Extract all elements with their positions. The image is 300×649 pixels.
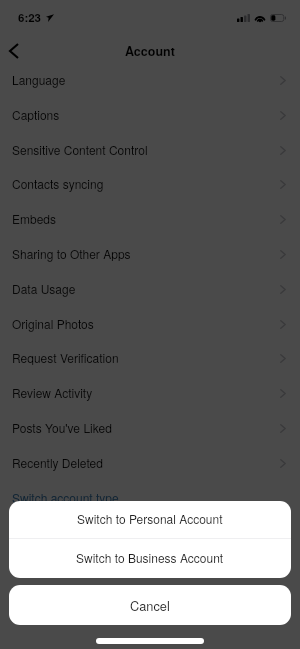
button[interactable]: Embeds [0, 201, 300, 236]
staticText: 6:23 [18, 9, 42, 25]
button[interactable]: Switch to Personal Account [9, 501, 291, 538]
staticText: Request Verification [12, 349, 119, 366]
button[interactable]: Original Photos [0, 306, 300, 341]
button[interactable]: Cancel [9, 585, 291, 625]
staticText: Posts You've Liked [12, 419, 112, 436]
button[interactable]: Sharing to Other Apps [0, 236, 300, 271]
button[interactable]: Contacts syncing [0, 166, 300, 201]
staticText: Switch to Personal Account [77, 510, 223, 527]
button[interactable]: Request Verification [0, 340, 300, 375]
button[interactable]: Back [0, 35, 30, 66]
button[interactable]: Review Activity [0, 375, 300, 410]
staticText: Language [12, 71, 66, 88]
staticText: Switch account type [12, 489, 119, 506]
button[interactable]: Data Usage [0, 271, 300, 306]
button[interactable]: Sensitive Content Control [0, 132, 300, 167]
button[interactable]: Switch to Business Account [9, 539, 291, 578]
staticText: Cancel [130, 596, 170, 614]
button[interactable]: Language [0, 62, 300, 97]
button[interactable]: Captions [0, 97, 300, 132]
staticText: Original Photos [12, 315, 94, 332]
staticText: Review Activity [12, 384, 93, 401]
button[interactable]: Switch account type [0, 480, 300, 515]
staticText: Contacts syncing [12, 175, 104, 192]
button[interactable]: Recently Deleted [0, 445, 300, 480]
button[interactable]: Posts You've Liked [0, 410, 300, 445]
staticText: Sensitive Content Control [12, 141, 148, 158]
staticText: Switch to Business Account [76, 549, 224, 566]
staticText: Captions [12, 106, 60, 123]
staticText: Account [125, 42, 175, 60]
staticText: Recently Deleted [12, 454, 103, 471]
staticText: Sharing to Other Apps [12, 245, 131, 262]
staticText: Data Usage [12, 280, 76, 297]
staticText: Embeds [12, 210, 57, 227]
